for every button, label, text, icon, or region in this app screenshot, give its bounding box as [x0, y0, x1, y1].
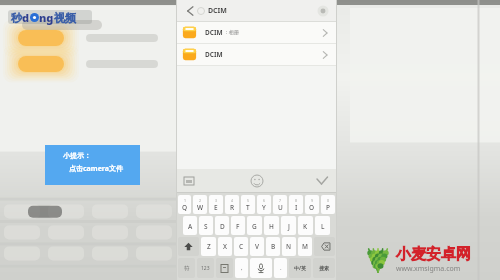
button[interactable]: M	[298, 237, 312, 256]
staticText: S	[204, 222, 208, 231]
staticText: ng	[39, 10, 54, 25]
button[interactable]: Emoji	[249, 173, 265, 189]
button[interactable]: V	[250, 237, 264, 256]
staticText: M	[302, 242, 308, 251]
button[interactable]: .	[274, 258, 287, 278]
staticText: ,	[241, 264, 243, 272]
button[interactable]: 2	[193, 195, 207, 214]
staticText: Y	[262, 203, 266, 212]
button[interactable]: 4	[225, 195, 239, 214]
button[interactable]: 3	[209, 195, 223, 214]
staticText: 6	[263, 198, 266, 203]
button[interactable]: Input method	[216, 258, 233, 278]
button[interactable]: C	[234, 237, 248, 256]
staticText: C	[239, 242, 244, 251]
button[interactable]: 7	[273, 195, 287, 214]
button[interactable]: More options	[316, 4, 330, 18]
button[interactable]: Back	[181, 3, 197, 19]
button[interactable]: Voice input	[250, 258, 272, 278]
staticText: .	[280, 264, 282, 272]
button[interactable]: A	[183, 216, 197, 235]
button[interactable]: 5	[241, 195, 255, 214]
staticText: 2	[199, 198, 202, 203]
staticText: www.xmsigma.com	[396, 264, 461, 274]
staticText: 1	[184, 198, 187, 203]
button[interactable]: 1	[178, 195, 191, 214]
staticText: A	[188, 222, 193, 231]
staticText: 小麦安卓网	[396, 245, 471, 264]
staticText: 点击camera文件	[69, 164, 123, 174]
staticText: P	[326, 203, 330, 212]
button[interactable]: 小提示：	[45, 145, 140, 185]
staticText: Q	[182, 203, 188, 212]
staticText: O	[309, 203, 315, 212]
button[interactable]: 0	[321, 195, 335, 214]
staticText: 中/英	[294, 265, 307, 272]
staticText: 搜索	[319, 265, 329, 271]
button[interactable]: Hide keyboard	[313, 172, 331, 190]
button[interactable]: ,	[235, 258, 248, 278]
button[interactable]: H	[264, 216, 279, 235]
button[interactable]: F	[231, 216, 245, 235]
button[interactable]: 符	[178, 258, 195, 278]
button[interactable]: B	[266, 237, 280, 256]
button[interactable]: DCIM	[176, 44, 337, 65]
staticText: V	[255, 242, 259, 251]
staticText: H	[269, 222, 274, 231]
staticText: 符	[184, 265, 190, 272]
button[interactable]: 6	[257, 195, 271, 214]
staticText: 7	[279, 198, 282, 203]
button[interactable]: Shift	[178, 237, 199, 256]
staticText: 3	[215, 198, 218, 203]
staticText: 小提示：	[63, 151, 91, 160]
staticText: Z	[207, 242, 211, 251]
button[interactable]: DCIM	[176, 22, 337, 43]
button[interactable]: 9	[305, 195, 319, 214]
staticText: U	[278, 203, 283, 212]
staticText: N	[286, 242, 292, 251]
staticText: J	[288, 222, 290, 231]
staticText: 123	[201, 265, 210, 272]
button[interactable]: K	[298, 216, 313, 235]
staticText: DCIM	[205, 28, 223, 37]
staticText: W	[197, 203, 204, 212]
button[interactable]: L	[315, 216, 330, 235]
staticText: 4	[231, 198, 234, 203]
button[interactable]: S	[199, 216, 213, 235]
staticText: I	[295, 203, 298, 212]
staticText: 秒	[11, 11, 22, 25]
button[interactable]: Z	[201, 237, 216, 256]
staticText: G	[252, 222, 257, 231]
staticText: 0	[327, 198, 330, 203]
staticText: E	[214, 203, 218, 212]
staticText: X	[223, 242, 227, 251]
staticText: K	[303, 222, 308, 231]
button[interactable]: J	[281, 216, 296, 235]
staticText: 视频	[54, 11, 76, 25]
staticText: R	[230, 203, 235, 212]
staticText: D	[220, 222, 225, 231]
staticText: DCIM	[208, 6, 227, 16]
staticText: : 相册	[226, 29, 239, 36]
button[interactable]: N	[282, 237, 296, 256]
button[interactable]: 搜索	[313, 258, 335, 278]
button[interactable]: Backspace	[314, 237, 335, 256]
button[interactable]: X	[218, 237, 232, 256]
staticText: B	[271, 242, 276, 251]
staticText: 9	[311, 198, 314, 203]
button[interactable]: 中/英	[289, 258, 311, 278]
staticText: DCIM	[205, 50, 223, 59]
staticText: 5	[247, 198, 250, 203]
button[interactable]: 123	[197, 258, 214, 278]
button[interactable]: G	[247, 216, 262, 235]
staticText: T	[246, 203, 250, 212]
staticText: d	[22, 10, 30, 25]
button[interactable]: 秒懂视频 logo	[8, 8, 92, 26]
staticText: F	[236, 222, 240, 231]
staticText: L	[321, 222, 325, 231]
staticText: 8	[295, 198, 298, 203]
button[interactable]: 8	[289, 195, 303, 214]
button[interactable]: D	[215, 216, 229, 235]
button[interactable]: Clipboard	[182, 174, 196, 188]
